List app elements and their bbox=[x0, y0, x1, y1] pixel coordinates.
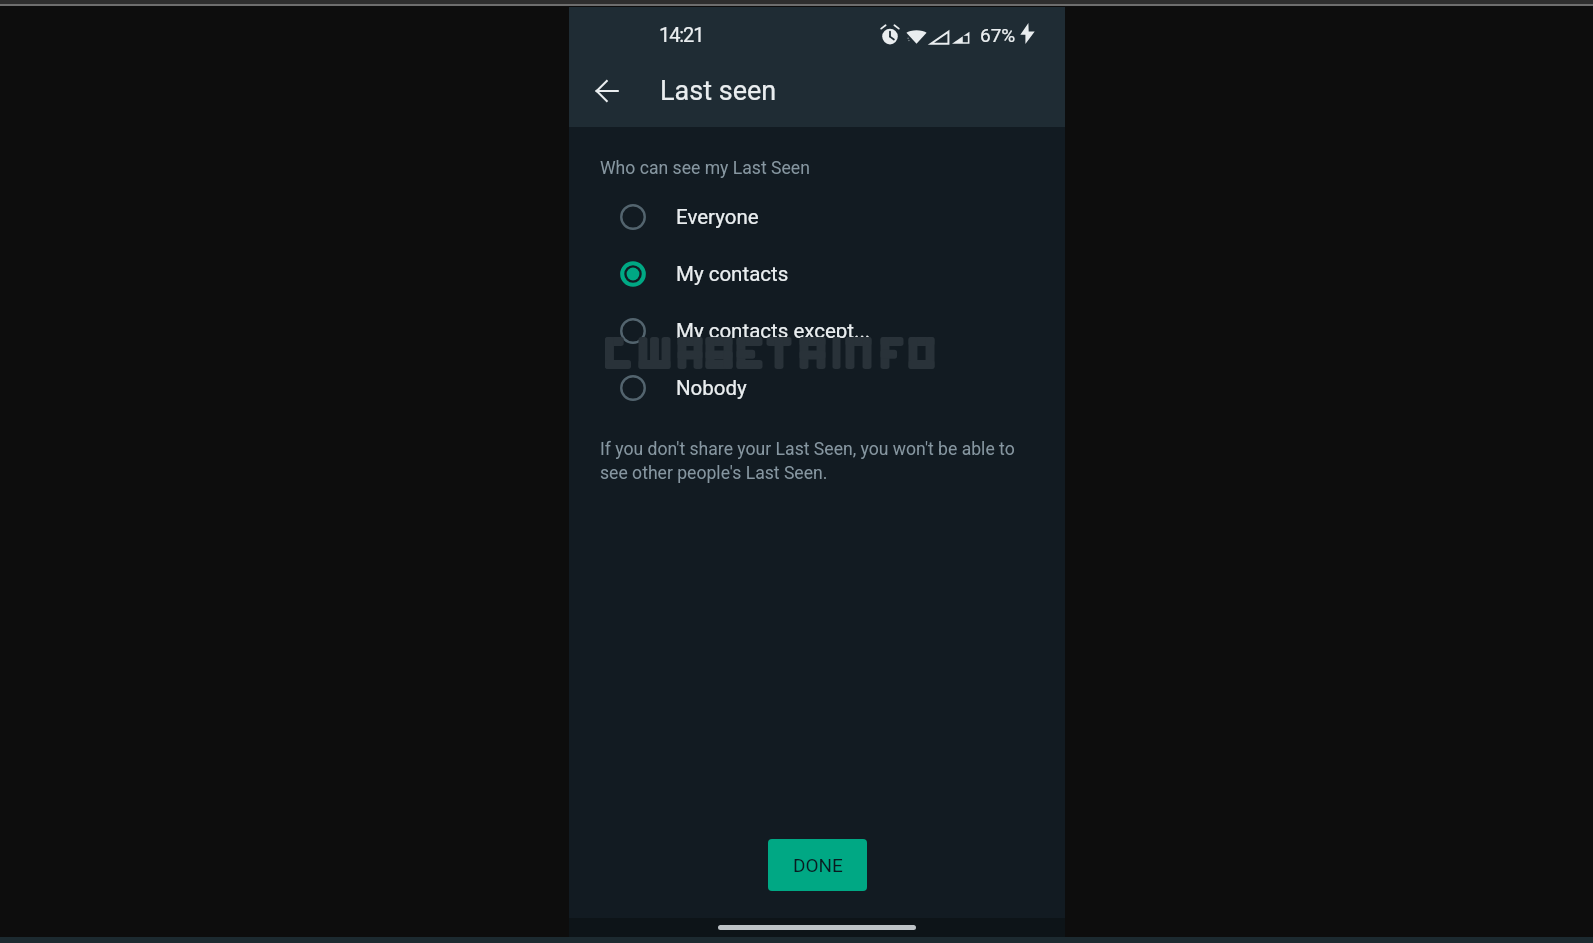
staticText: My contacts except... bbox=[676, 319, 871, 343]
staticText: Who can see my Last Seen bbox=[600, 158, 810, 179]
button[interactable]: My contacts bbox=[569, 245, 1065, 302]
staticText: Nobody bbox=[676, 376, 747, 400]
staticText: If you don't share your Last Seen, you w… bbox=[600, 439, 1023, 483]
button[interactable]: Everyone bbox=[569, 188, 1065, 245]
button[interactable]: Nobody bbox=[569, 359, 1065, 416]
button[interactable]: Back bbox=[588, 72, 626, 110]
staticText: DONE bbox=[793, 854, 843, 876]
staticText: 67% bbox=[980, 24, 1016, 46]
staticText: Last seen bbox=[660, 75, 777, 107]
button[interactable]: My contacts except... bbox=[569, 302, 1065, 359]
button[interactable]: DONE bbox=[768, 839, 867, 891]
staticText: 14:21 bbox=[659, 23, 704, 46]
staticText: My contacts bbox=[676, 262, 789, 286]
staticText: Everyone bbox=[676, 205, 759, 229]
